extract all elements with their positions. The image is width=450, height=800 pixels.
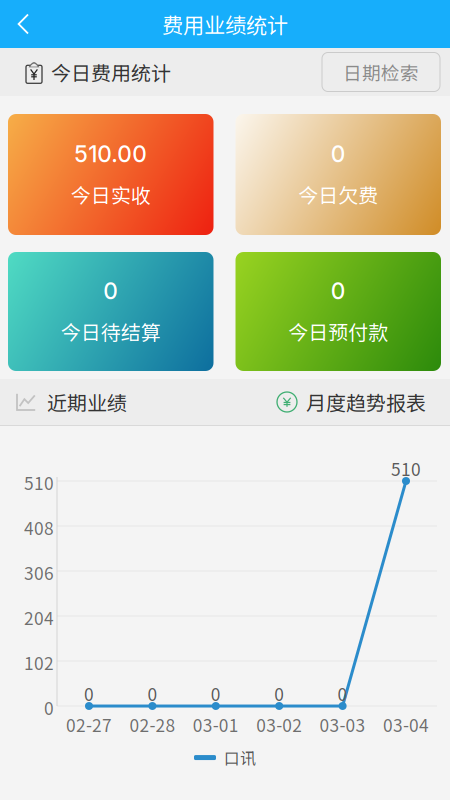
staticText: 今日待结算 bbox=[61, 317, 161, 346]
button[interactable]: 0 bbox=[235, 252, 441, 371]
staticText: 03-04 bbox=[383, 712, 429, 737]
staticText: 日期检索 bbox=[343, 58, 419, 85]
button[interactable]: 510.00 bbox=[8, 114, 213, 235]
staticText: 306 bbox=[24, 560, 54, 585]
staticText: 510.00 bbox=[74, 140, 147, 168]
staticText: 03-03 bbox=[320, 712, 366, 737]
staticText: 02-28 bbox=[129, 712, 175, 737]
staticText: 口讯 bbox=[224, 746, 256, 769]
button[interactable]: 0 bbox=[235, 114, 441, 235]
staticText: 今日欠费 bbox=[298, 180, 378, 209]
staticText: 0 bbox=[338, 681, 348, 706]
staticText: 今日预付款 bbox=[288, 317, 388, 346]
staticText: 费用业绩统计 bbox=[162, 9, 288, 39]
staticText: 0 bbox=[147, 681, 157, 706]
button[interactable]: 月度趋势报表 bbox=[277, 387, 426, 416]
staticText: 510 bbox=[24, 470, 54, 495]
staticText: 0 bbox=[84, 681, 94, 706]
staticText: 今日费用统计 bbox=[51, 57, 171, 86]
staticText: 0 bbox=[211, 681, 221, 706]
staticText: 02-27 bbox=[66, 712, 112, 737]
staticText: 204 bbox=[24, 605, 54, 630]
staticText: 近期业绩 bbox=[47, 387, 127, 416]
staticText: 今日实收 bbox=[71, 180, 151, 209]
button[interactable]: 日期检索 bbox=[322, 52, 440, 91]
button[interactable]: Back bbox=[0, 0, 46, 48]
staticText: 408 bbox=[24, 515, 54, 540]
staticText: 月度趋势报表 bbox=[306, 387, 426, 416]
staticText: 0 bbox=[44, 695, 54, 720]
staticText: 0 bbox=[331, 140, 346, 168]
staticText: 0 bbox=[331, 277, 346, 305]
staticText: 03-01 bbox=[193, 712, 239, 737]
staticText: 102 bbox=[24, 650, 54, 675]
staticText: 0 bbox=[103, 277, 118, 305]
staticText: 510 bbox=[391, 456, 421, 481]
button[interactable]: 0 bbox=[8, 252, 213, 371]
staticText: 03-02 bbox=[256, 712, 302, 737]
staticText: 0 bbox=[274, 681, 284, 706]
